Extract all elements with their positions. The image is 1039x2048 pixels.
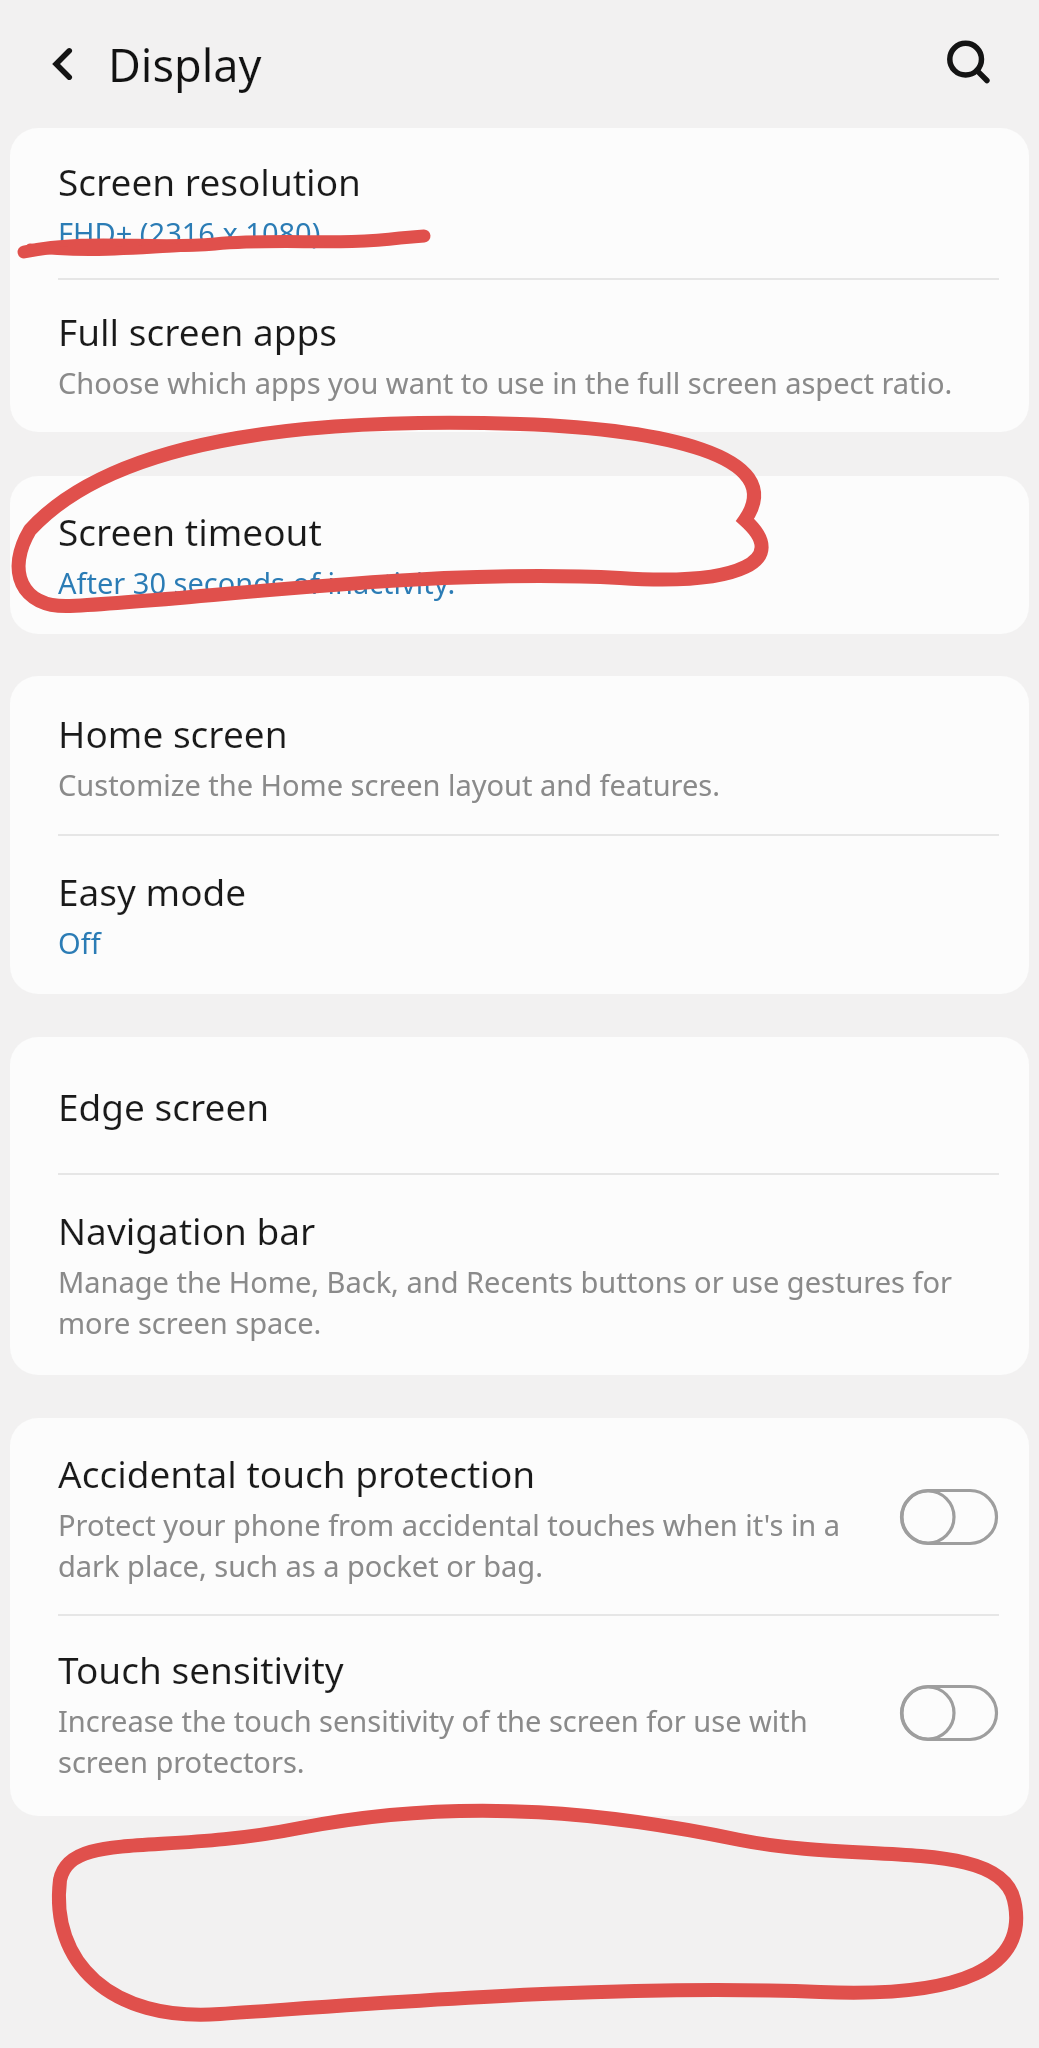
button[interactable]: Navigation bar xyxy=(10,1175,1029,1375)
button[interactable]: Screen resolution xyxy=(10,128,1029,278)
staticText: Accidental touch protection xyxy=(58,1448,536,1498)
staticText: Navigation bar xyxy=(58,1205,316,1255)
staticText: Screen timeout xyxy=(58,506,322,556)
staticText: Manage the Home, Back, and Recents butto… xyxy=(58,1262,999,1343)
button[interactable]: Toggle off xyxy=(899,1684,999,1742)
staticText: After 30 seconds of inactivity. xyxy=(58,563,456,602)
button[interactable]: Touch sensitivity xyxy=(10,1616,1029,1816)
staticText: Choose which apps you want to use in the… xyxy=(58,363,953,402)
staticText: Display xyxy=(108,34,262,95)
staticText: Home screen xyxy=(58,708,288,758)
staticText: Easy mode xyxy=(58,866,247,916)
button[interactable]: Edge screen xyxy=(10,1037,1029,1173)
button[interactable]: Easy mode xyxy=(10,836,1029,994)
button[interactable]: Accidental touch protection xyxy=(10,1418,1029,1614)
button[interactable]: Full screen apps xyxy=(10,280,1029,432)
button[interactable]: Home screen xyxy=(10,676,1029,834)
button[interactable]: Toggle off xyxy=(899,1488,999,1546)
button[interactable]: Screen timeout xyxy=(10,476,1029,634)
staticText: FHD+ (2316 x 1080) xyxy=(58,213,321,252)
staticText: Full screen apps xyxy=(58,306,338,356)
staticText: Protect your phone from accidental touch… xyxy=(58,1505,885,1586)
staticText: Increase the touch sensitivity of the sc… xyxy=(58,1701,885,1782)
staticText: Touch sensitivity xyxy=(58,1644,344,1694)
staticText: Off xyxy=(58,923,101,962)
staticText: Customize the Home screen layout and fea… xyxy=(58,765,720,804)
button[interactable]: Search xyxy=(931,26,1007,102)
staticText: Edge screen xyxy=(58,1081,270,1131)
staticText: Screen resolution xyxy=(58,156,361,206)
button[interactable]: Back xyxy=(28,28,100,100)
